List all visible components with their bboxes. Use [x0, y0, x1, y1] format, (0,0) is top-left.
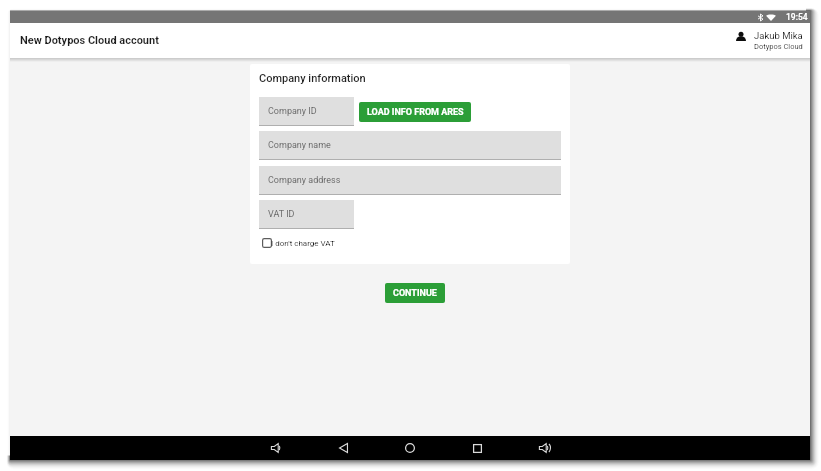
staticText: Company information [259, 72, 366, 85]
staticText: Company ID [268, 106, 317, 117]
staticText: VAT ID [268, 209, 295, 220]
staticText: LOAD INFO FROM ARES [367, 107, 464, 118]
button[interactable]: Company address [259, 166, 561, 195]
button[interactable]: VAT ID [259, 200, 354, 229]
button[interactable]: Volume down [270, 442, 282, 454]
staticText: Jakub Mika [754, 30, 803, 41]
button[interactable]: Back [337, 442, 349, 454]
staticText: CONTINUE [393, 288, 437, 299]
staticText: 19:54 [786, 12, 808, 22]
button[interactable]: Home [404, 442, 416, 454]
staticText: Dotypos Cloud [754, 42, 803, 51]
button[interactable]: Volume up [538, 442, 550, 454]
staticText: Company name [268, 140, 331, 151]
staticText: Company address [268, 175, 341, 186]
button[interactable]: Account [736, 23, 810, 58]
button[interactable]: Company ID [259, 97, 354, 126]
staticText: New Dotypos Cloud account [20, 34, 159, 47]
staticText: I don't charge VAT [271, 239, 335, 248]
button[interactable]: Recent apps [471, 442, 483, 454]
other: Account [736, 32, 746, 41]
button[interactable]: I don't charge VAT [259, 229, 336, 257]
button[interactable]: LOAD INFO FROM ARES [359, 102, 471, 122]
button[interactable]: CONTINUE [385, 283, 445, 303]
button[interactable]: Company name [259, 131, 561, 160]
